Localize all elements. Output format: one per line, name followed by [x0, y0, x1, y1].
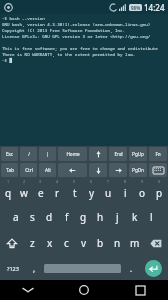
staticText: Home	[66, 151, 80, 157]
button[interactable]: Fn	[149, 147, 167, 161]
button[interactable]: ,	[26, 256, 42, 280]
staticText: GNU bash, version 4.3.30(1)-release (arm…	[2, 22, 151, 28]
staticText: s	[30, 210, 35, 224]
staticText: PgDn	[132, 167, 144, 173]
staticText: 0	[158, 179, 161, 184]
button[interactable]: Arrow key	[89, 147, 107, 161]
button[interactable]: Home	[56, 280, 112, 300]
button[interactable]: 7	[100, 178, 117, 204]
button[interactable]: 4	[49, 178, 66, 204]
staticText: b	[97, 236, 104, 250]
staticText: q	[5, 186, 12, 200]
button[interactable]: Arrow key	[58, 163, 87, 177]
button[interactable]: l	[143, 204, 160, 230]
staticText: Tab	[6, 167, 14, 173]
button[interactable]: k	[126, 204, 143, 230]
staticText: u	[105, 186, 112, 200]
staticText: 9	[141, 179, 144, 184]
button[interactable]: h	[92, 204, 109, 230]
button[interactable]: Recents	[112, 280, 168, 300]
button[interactable]: b	[92, 230, 109, 256]
button[interactable]: Ctrl	[20, 163, 37, 177]
button[interactable]: Tab	[1, 163, 18, 177]
staticText: Alt	[45, 167, 51, 173]
staticText: w	[20, 186, 28, 200]
button[interactable]: 1	[0, 178, 16, 204]
button[interactable]: Backspace	[143, 230, 168, 256]
staticText: d	[46, 210, 53, 224]
button[interactable]: 6	[83, 178, 100, 204]
staticText: 1	[7, 179, 10, 184]
button[interactable]: Alt	[39, 163, 56, 177]
staticText: 8	[124, 179, 127, 184]
staticText: l	[150, 210, 153, 224]
button[interactable]: a	[7, 204, 24, 230]
staticText: v	[81, 236, 87, 250]
button[interactable]: .	[123, 256, 139, 280]
staticText: ~$ bash --version	[2, 16, 45, 22]
staticText: Esc	[6, 151, 13, 157]
button[interactable]: Arrow key	[109, 163, 127, 177]
staticText: End	[114, 151, 123, 157]
button[interactable]: x	[41, 230, 58, 256]
staticText: x	[47, 236, 53, 250]
staticText: o	[139, 186, 146, 200]
staticText: 3	[39, 179, 42, 184]
button[interactable]: End	[109, 147, 127, 161]
button[interactable]: j	[109, 204, 126, 230]
button[interactable]: 2	[16, 178, 32, 204]
staticText: 4	[56, 179, 59, 184]
button[interactable]: 0	[151, 178, 168, 204]
staticText: 7	[107, 179, 110, 184]
button[interactable]: m	[126, 230, 143, 256]
staticText: 98%	[131, 5, 141, 11]
button[interactable]: |	[39, 147, 56, 161]
button[interactable]: s	[24, 204, 41, 230]
staticText: |	[46, 151, 49, 157]
staticText: e	[38, 186, 44, 200]
button[interactable]: Arrow key	[89, 163, 107, 177]
staticText: j	[116, 210, 119, 224]
button[interactable]: Back	[0, 280, 56, 300]
button[interactable]: 3	[32, 178, 49, 204]
other: Hide keyboard	[153, 167, 164, 174]
button[interactable]: 8	[117, 178, 134, 204]
button[interactable]: /	[20, 147, 37, 161]
button[interactable]: f	[58, 204, 75, 230]
button[interactable]: d	[41, 204, 58, 230]
staticText: h	[97, 210, 104, 224]
staticText: Fn	[155, 151, 161, 157]
staticText: a	[13, 210, 19, 224]
button[interactable]: PgUp	[129, 147, 147, 161]
button[interactable]: Hide keyboard	[149, 163, 167, 177]
button[interactable]: z	[24, 230, 41, 256]
button[interactable]: PgDn	[129, 163, 147, 177]
staticText: g	[80, 210, 87, 224]
staticText: i	[124, 186, 127, 200]
button[interactable]: g	[75, 204, 92, 230]
staticText: z	[30, 236, 35, 250]
button[interactable]: 5	[66, 178, 83, 204]
staticText: Copyright (C) 2013 Free Software Foundat…	[2, 28, 126, 34]
staticText: There is NO WARRANTY, to the extent perm…	[2, 52, 136, 58]
button[interactable]: Enter	[145, 260, 162, 277]
staticText: 5	[73, 179, 76, 184]
staticText: 6	[90, 179, 93, 184]
button[interactable]: Shift	[0, 230, 24, 256]
other: Arrow key	[95, 151, 102, 158]
button[interactable]: n	[109, 230, 126, 256]
button[interactable]: c	[58, 230, 75, 256]
button[interactable]: ?123	[0, 256, 26, 280]
button[interactable]: 9	[134, 178, 151, 204]
staticText: ~$ █	[2, 58, 13, 64]
button[interactable]: v	[75, 230, 92, 256]
staticText: n	[114, 236, 121, 250]
button[interactable]: Home	[58, 147, 87, 161]
staticText: Ctrl	[25, 167, 33, 173]
staticText: r	[55, 186, 60, 200]
staticText: k	[132, 210, 138, 224]
other: Arrow key	[95, 167, 102, 174]
staticText: c	[64, 236, 69, 250]
button[interactable]: Esc	[1, 147, 18, 161]
